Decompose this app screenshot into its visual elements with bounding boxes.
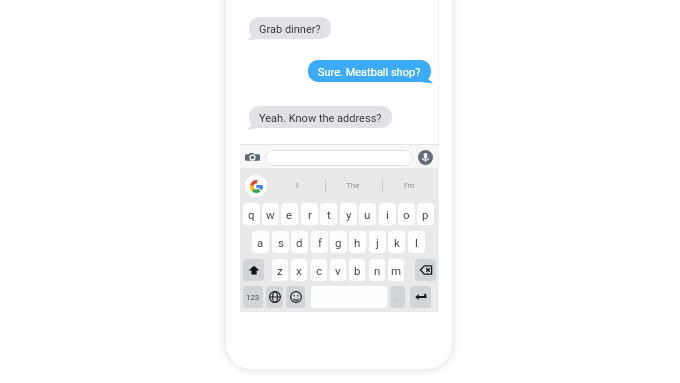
button[interactable]: w [262, 203, 279, 225]
staticText: The [346, 181, 360, 190]
staticText: q [248, 208, 255, 221]
button[interactable]: Backspace [415, 259, 436, 281]
button[interactable]: l [408, 231, 425, 253]
staticText: h [354, 236, 361, 249]
staticText: g [335, 236, 342, 249]
button[interactable]: m [388, 259, 404, 281]
staticText: k [394, 236, 400, 249]
staticText: f [318, 236, 322, 249]
button[interactable]: e [281, 203, 298, 225]
button[interactable]: Yeah. Know the address? [249, 106, 392, 128]
button[interactable]: Grab dinner? [249, 17, 331, 39]
staticText: 123 [246, 293, 260, 302]
staticText: v [335, 264, 341, 277]
staticText: w [266, 208, 275, 221]
button[interactable]: z [272, 259, 288, 281]
staticText: s [278, 236, 284, 249]
button[interactable]: I'm [387, 168, 432, 203]
button[interactable]: Camera [245, 151, 260, 163]
button[interactable]: Shift [243, 259, 264, 281]
button[interactable]: s [272, 231, 289, 253]
button[interactable]: y [340, 203, 357, 225]
button[interactable]: j [369, 231, 386, 253]
button[interactable]: c [311, 259, 327, 281]
staticText: i [386, 208, 389, 221]
button[interactable]: q [243, 203, 260, 225]
staticText: x [296, 264, 302, 277]
button[interactable]: . [390, 286, 405, 308]
button[interactable]: Language [266, 286, 283, 308]
button[interactable]: r [301, 203, 318, 225]
staticText: m [391, 264, 402, 277]
button[interactable]: Emoji [286, 286, 305, 308]
staticText: I [296, 181, 299, 190]
button[interactable]: Google [245, 175, 267, 197]
button[interactable]: Sure. Meatball shop? [308, 60, 431, 82]
staticText: a [257, 236, 264, 249]
button[interactable]: t [320, 203, 337, 225]
button[interactable]: Enter [410, 286, 431, 308]
button[interactable]: d [291, 231, 308, 253]
button[interactable]: x [291, 259, 307, 281]
staticText: j [376, 236, 379, 249]
button[interactable] [265, 150, 413, 166]
staticText: b [354, 264, 361, 277]
staticText: I'm [404, 181, 415, 190]
staticText: e [286, 208, 293, 221]
button[interactable]: i [379, 203, 396, 225]
button[interactable]: u [359, 203, 376, 225]
staticText: r [308, 208, 312, 221]
button[interactable]: Voice input [418, 150, 433, 165]
button[interactable]: f [311, 231, 328, 253]
staticText: p [422, 208, 429, 221]
button[interactable]: o [398, 203, 415, 225]
staticText: y [346, 208, 352, 221]
button[interactable]: n [369, 259, 385, 281]
staticText: n [374, 264, 381, 277]
staticText: Grab dinner? [259, 23, 321, 36]
button[interactable]: p [417, 203, 434, 225]
staticText: Yeah. Know the address? [259, 112, 382, 125]
staticText: Sure. Meatball shop? [318, 66, 421, 79]
button[interactable]: The [326, 168, 380, 203]
staticText: t [327, 208, 331, 221]
staticText: u [364, 208, 371, 221]
staticText: l [415, 236, 418, 249]
staticText: c [316, 264, 323, 277]
staticText: . [396, 293, 399, 302]
button[interactable]: v [330, 259, 346, 281]
button[interactable]: g [330, 231, 347, 253]
button[interactable]: 123 [243, 286, 263, 308]
button[interactable]: k [388, 231, 405, 253]
staticText: d [296, 236, 303, 249]
button[interactable]: a [252, 231, 269, 253]
staticText: o [403, 208, 410, 221]
staticText: z [277, 264, 283, 277]
button[interactable]: b [349, 259, 365, 281]
button[interactable]: h [349, 231, 366, 253]
